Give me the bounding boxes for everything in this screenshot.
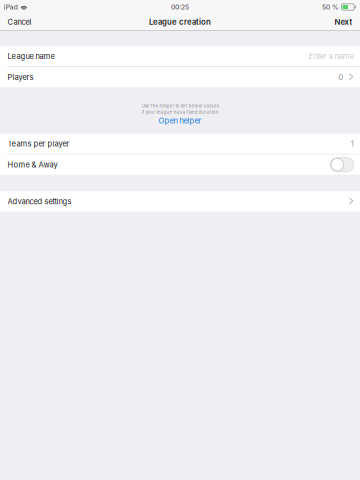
button[interactable]: Teams per player — [0, 134, 360, 154]
staticText: Home & Away — [8, 160, 58, 169]
staticText: Teams per player — [8, 139, 70, 148]
staticText: Cancel — [8, 17, 32, 27]
staticText: Enter a name — [309, 52, 354, 61]
staticText: Advanced settings — [8, 197, 72, 206]
staticText: League creation — [149, 17, 211, 27]
button[interactable]: League name — [0, 46, 360, 66]
staticText: Players — [8, 73, 34, 82]
button[interactable]: Cancel — [0, 14, 39, 30]
button[interactable]: Players — [0, 67, 360, 87]
staticText: 1 — [351, 139, 354, 148]
button[interactable]: Advanced settings — [0, 191, 360, 211]
staticText: Next — [334, 17, 352, 27]
staticText: 00:25 — [171, 3, 189, 11]
button[interactable]: Home & Away — [0, 154, 360, 175]
staticText: 0 — [338, 73, 343, 82]
staticText: iPad — [4, 3, 18, 11]
staticText: League name — [8, 52, 55, 61]
button[interactable]: Next — [327, 14, 360, 30]
staticText: Open helper — [158, 116, 201, 125]
staticText: if your league has a fixed duration — [141, 109, 218, 115]
button[interactable]: Open helper — [150, 115, 209, 125]
staticText: Use the helper to set below values — [141, 103, 218, 109]
staticText: 50 % — [322, 3, 339, 11]
